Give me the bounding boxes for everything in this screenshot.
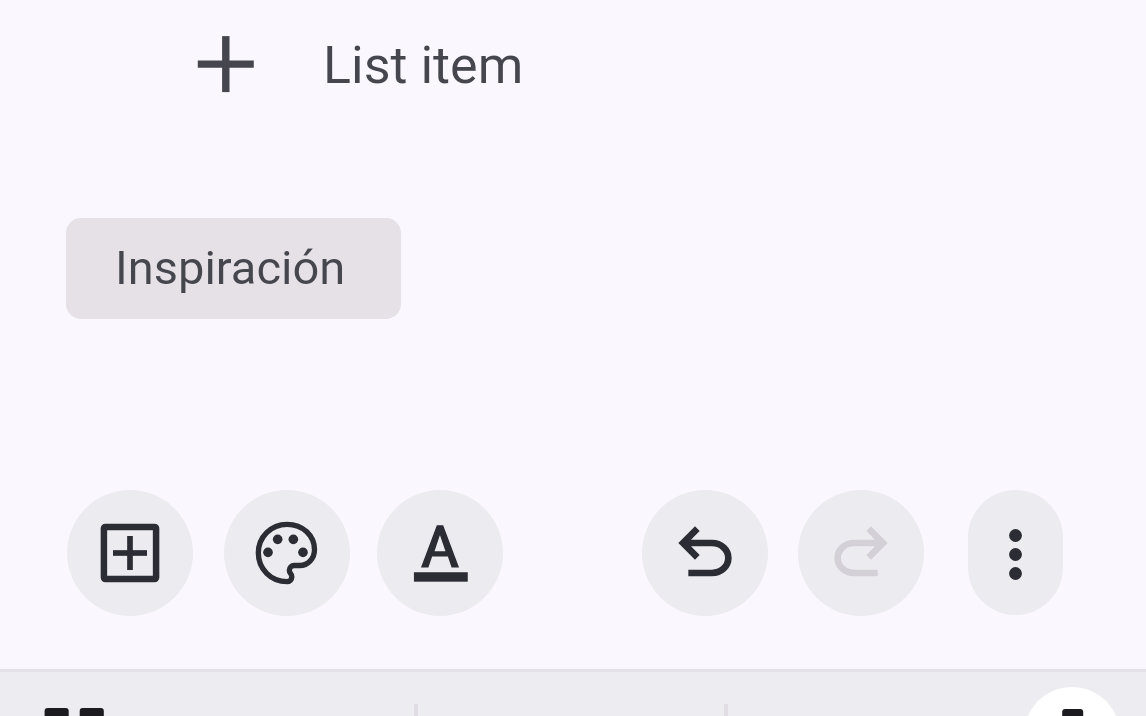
button[interactable]: Text colour xyxy=(377,490,503,616)
button[interactable]: Redo xyxy=(798,490,924,616)
button[interactable]: Dashboard xyxy=(20,690,130,716)
button[interactable]: Insert xyxy=(67,490,193,616)
button[interactable]: Inspiración xyxy=(66,218,401,319)
button[interactable]: List item xyxy=(0,0,1146,128)
button[interactable]: Colour palette xyxy=(224,490,350,616)
button[interactable]: Undo xyxy=(642,490,768,616)
staticText: Inspiración xyxy=(115,240,346,295)
button[interactable]: Create xyxy=(1024,687,1120,716)
staticText: List item xyxy=(323,35,524,96)
button[interactable]: More options xyxy=(968,490,1063,615)
